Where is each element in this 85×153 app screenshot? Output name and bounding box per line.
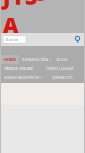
- staticText: JYSA: [3, 0, 44, 39]
- staticText: ▾: [40, 76, 41, 79]
- staticText: Servicio de asistencia técnica: [3, 40, 40, 50]
- button[interactable]: SOBRE NOSOTROS: [1, 73, 44, 82]
- staticText: REPARACIÓN: [22, 57, 48, 62]
- button[interactable]: HOME: [1, 55, 19, 64]
- button[interactable]: Buscar: [3, 36, 26, 43]
- staticText: BLOG: [56, 57, 67, 62]
- staticText: SOBRE NOSOTROS: [4, 75, 39, 80]
- button[interactable]: CONTACTO: [48, 73, 75, 82]
- staticText: CONTACTO: [51, 75, 72, 80]
- staticText: Buscar: [5, 37, 18, 42]
- button[interactable]: TIENDA ONLINE: [1, 64, 36, 73]
- staticText: electrónica: [3, 50, 22, 56]
- button[interactable]: BLOG: [53, 55, 70, 64]
- button[interactable]: REPARACIÓN: [19, 55, 53, 64]
- staticText: CÓMO LLEGAR: [46, 66, 74, 71]
- button[interactable]: CÓMO LLEGAR: [43, 64, 77, 73]
- staticText: TIENDA ONLINE: [4, 66, 33, 71]
- staticText: HOME: [4, 57, 16, 62]
- button[interactable]: Buscar: [74, 35, 81, 43]
